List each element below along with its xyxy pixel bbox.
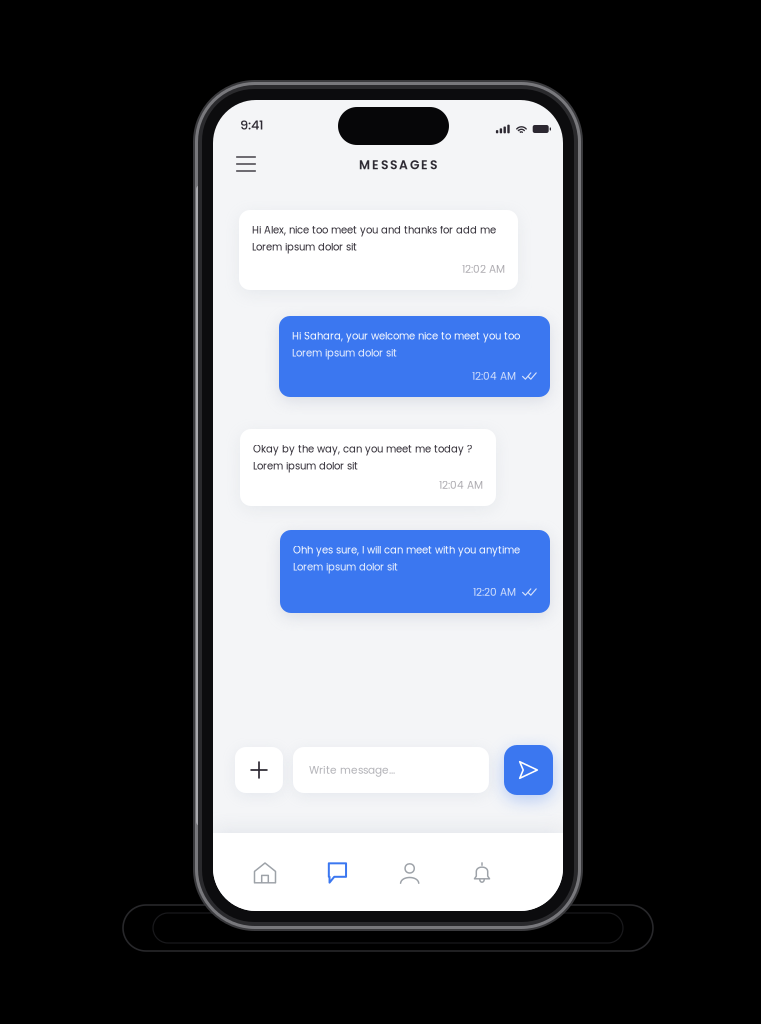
staticText: M E S S A G E S bbox=[359, 156, 437, 174]
button[interactable]: Messages bbox=[307, 851, 367, 895]
button[interactable]: Home bbox=[235, 851, 295, 895]
staticText: Lorem ipsum dolor sit bbox=[293, 560, 398, 574]
staticText: Lorem ipsum dolor sit bbox=[292, 346, 397, 360]
button[interactable]: Send message bbox=[504, 745, 553, 795]
staticText: Hi Sahara, your welcome nice to meet you… bbox=[292, 329, 520, 343]
staticText: Ohh yes sure, I will can meet with you a… bbox=[293, 543, 520, 557]
staticText: 12:20 AM bbox=[473, 585, 516, 599]
staticText: 12:04 AM bbox=[472, 369, 516, 383]
staticText: Okay by the way, can you meet me today ? bbox=[253, 442, 472, 456]
staticText: 12:04 AM bbox=[439, 478, 483, 492]
staticText: 9:41 bbox=[240, 116, 264, 134]
button[interactable]: Add attachment bbox=[235, 747, 283, 793]
staticText: Lorem ipsum dolor sit bbox=[252, 240, 357, 254]
button[interactable]: Profile bbox=[380, 851, 440, 895]
staticText: Lorem ipsum dolor sit bbox=[253, 459, 358, 473]
staticText: Hi Alex, nice too meet you and thanks fo… bbox=[252, 223, 496, 237]
staticText: Write message... bbox=[309, 763, 395, 777]
button[interactable]: Open menu bbox=[228, 148, 264, 180]
staticText: 12:02 AM bbox=[462, 262, 505, 276]
button[interactable]: Write message... bbox=[293, 747, 489, 793]
button[interactable]: Notifications bbox=[452, 851, 512, 895]
